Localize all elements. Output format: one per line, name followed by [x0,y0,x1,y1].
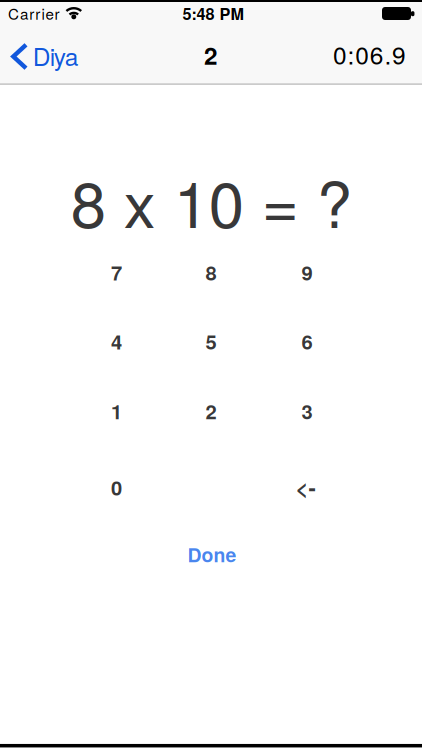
staticText: 2 [205,397,216,425]
button[interactable]: 4 [69,308,163,374]
staticText: 5:48 PM [182,2,243,25]
button[interactable]: 6 [260,308,354,374]
staticText: 5 [205,327,216,356]
button[interactable]: 5 [164,308,258,374]
staticText: Carrier [8,2,60,24]
button[interactable]: 9 [260,239,354,305]
button[interactable]: 7 [69,239,163,305]
staticText: Done [187,540,236,568]
button[interactable]: Done [167,532,257,576]
button[interactable]: 0 [69,454,163,520]
staticText: 7 [111,258,122,287]
staticText: 0:06.9 [333,36,406,72]
staticText: 8 [205,258,216,287]
button[interactable]: 8 [164,239,258,305]
button[interactable]: Delete [258,454,352,520]
staticText: 1 [111,397,122,425]
staticText: 9 [301,258,312,287]
staticText: Diya [33,38,79,73]
staticText: 0 [111,473,122,502]
button[interactable]: 1 [69,378,163,444]
staticText: 4 [111,327,122,356]
button[interactable]: 2 [164,378,258,444]
staticText: 6 [301,327,312,356]
staticText: 2 [204,37,218,72]
staticText: <- [295,471,315,503]
button[interactable]: 3 [260,378,354,444]
staticText: 8 x 10 = ? [71,155,352,246]
staticText: 3 [301,397,312,425]
button[interactable]: Diya [0,34,88,78]
